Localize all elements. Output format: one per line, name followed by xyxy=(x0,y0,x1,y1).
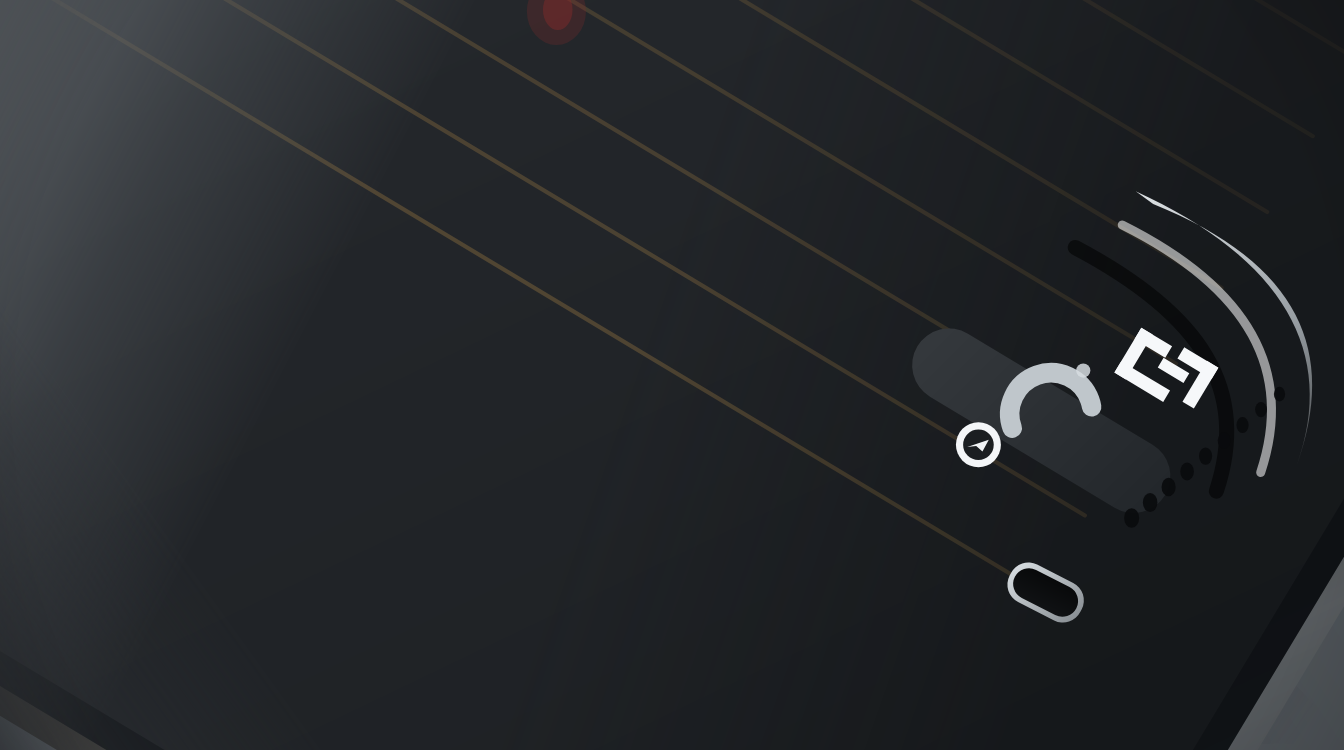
button[interactable]: Phone screen showing a dark settings lis… xyxy=(0,0,1344,750)
